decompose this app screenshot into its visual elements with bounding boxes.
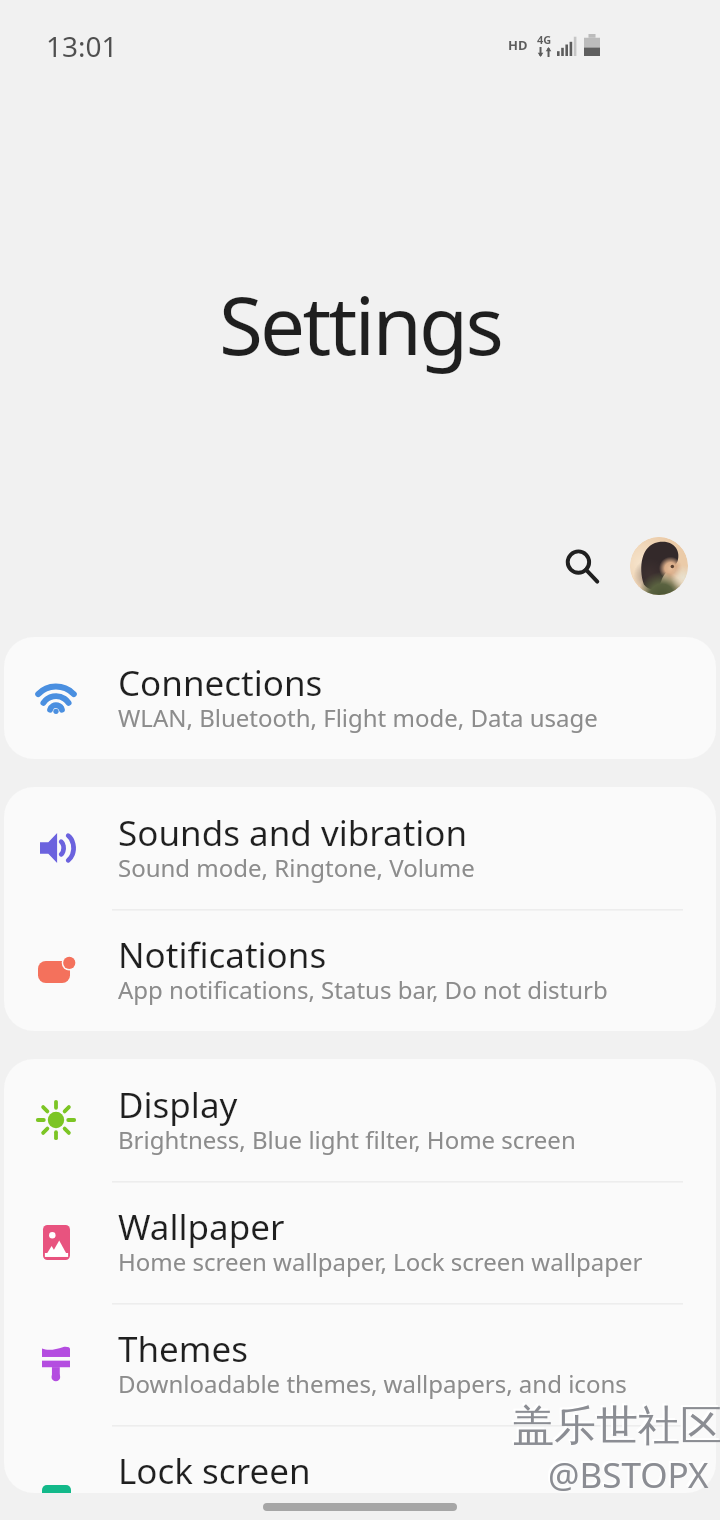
staticText: Brightness, Blue light filter, Home scre… — [118, 1123, 576, 1156]
button[interactable]: Themes — [4, 1303, 716, 1425]
button[interactable]: Display — [4, 1059, 716, 1181]
staticText: 4G — [537, 32, 552, 47]
button[interactable]: Connections — [4, 637, 716, 759]
staticText: App notifications, Status bar, Do not di… — [118, 973, 608, 1006]
staticText: @BSTOPX — [546, 1449, 707, 1497]
button[interactable]: Sounds and vibration — [4, 787, 716, 909]
staticText: Themes — [118, 1325, 249, 1373]
button[interactable]: Search — [546, 530, 618, 602]
button[interactable]: Lock screen — [4, 1425, 716, 1493]
staticText: Settings — [0, 269, 720, 378]
staticText: Downloadable themes, wallpapers, and ico… — [118, 1367, 627, 1400]
staticText: Sounds and vibration — [118, 809, 468, 857]
staticText: Lock screen — [118, 1447, 311, 1493]
staticText: @BSTOPX — [548, 1451, 709, 1499]
staticText: 盖乐世社区 — [512, 1400, 720, 1453]
staticText: Wallpaper — [118, 1203, 285, 1251]
staticText: 盖乐世社区 — [510, 1398, 720, 1451]
staticText: Notifications — [118, 931, 327, 979]
button[interactable]: Wallpaper — [4, 1181, 716, 1303]
staticText: WLAN, Bluetooth, Flight mode, Data usage — [118, 701, 598, 734]
staticText: 13:01 — [46, 27, 118, 65]
staticText: Connections — [118, 659, 323, 707]
staticText: Display — [118, 1081, 238, 1129]
button[interactable]: Notifications — [4, 909, 716, 1031]
staticText: Home screen wallpaper, Lock screen wallp… — [118, 1245, 643, 1278]
staticText: Sound mode, Ringtone, Volume — [118, 851, 475, 884]
button[interactable]: Profile — [623, 530, 695, 602]
staticText: HD — [508, 36, 528, 54]
